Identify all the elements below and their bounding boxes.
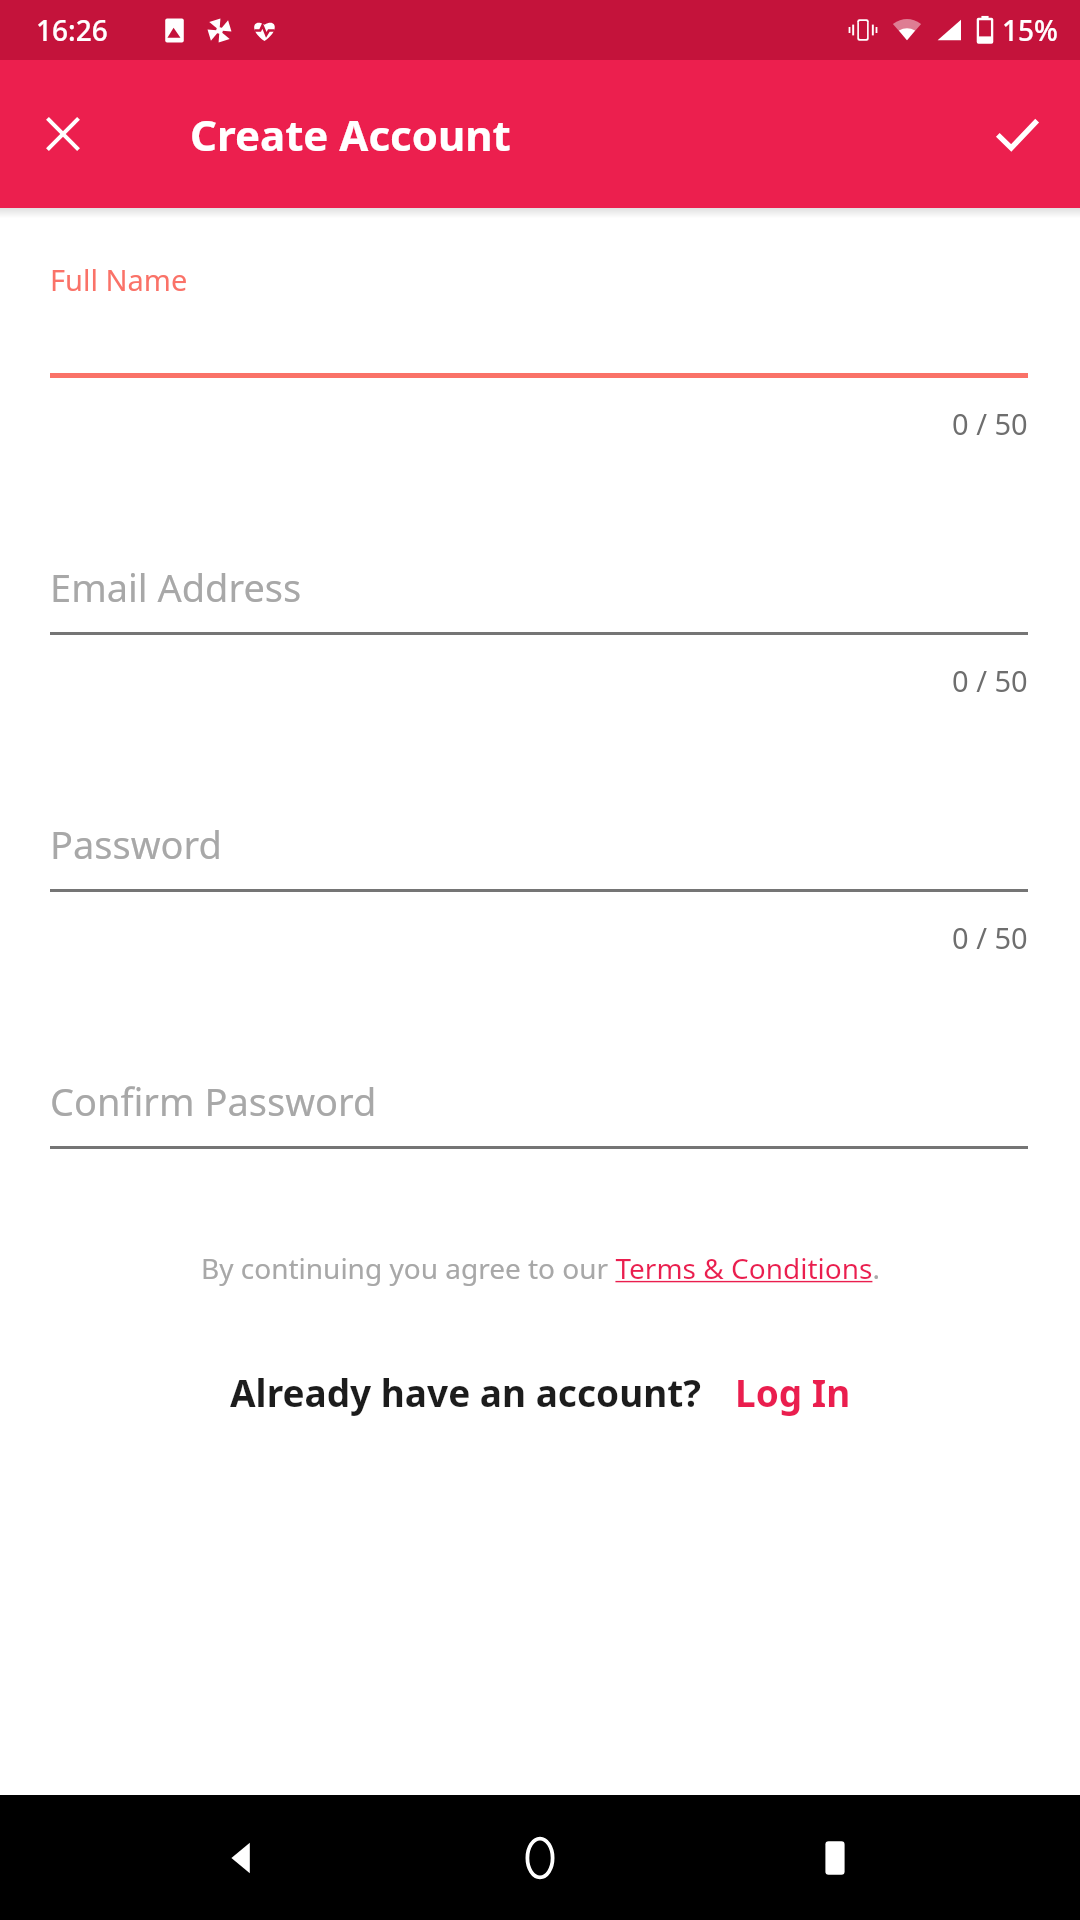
staticText: Already have an account?	[230, 1367, 701, 1417]
button[interactable]: Full Name	[0, 248, 1080, 378]
staticText: Create Account	[190, 106, 511, 163]
button[interactable]: Email Address	[0, 505, 1080, 635]
staticText: 16:26	[36, 11, 108, 49]
staticText: Confirm Password	[50, 1075, 377, 1127]
button[interactable]: Confirm	[976, 93, 1058, 175]
staticText: 15%	[1002, 11, 1058, 49]
staticText: 0 / 50	[952, 661, 1028, 700]
button[interactable]: Log In	[735, 1367, 851, 1417]
staticText: Email Address	[50, 561, 302, 613]
button[interactable]: Confirm Password	[0, 1019, 1080, 1149]
staticText: 0 / 50	[952, 404, 1028, 443]
button[interactable]: Back	[195, 1808, 295, 1908]
staticText: Log In	[735, 1367, 851, 1417]
button[interactable]: Password	[0, 762, 1080, 892]
button[interactable]: By continuing you agree to our Terms & C…	[201, 1249, 880, 1287]
button[interactable]: Recents	[785, 1808, 885, 1908]
staticText: By continuing you agree to our Terms & C…	[201, 1249, 880, 1287]
button[interactable]: Home	[490, 1808, 590, 1908]
staticText: Password	[50, 818, 222, 870]
staticText: Full Name	[50, 260, 188, 299]
staticText: 0 / 50	[952, 918, 1028, 957]
button[interactable]: Close	[22, 93, 104, 175]
